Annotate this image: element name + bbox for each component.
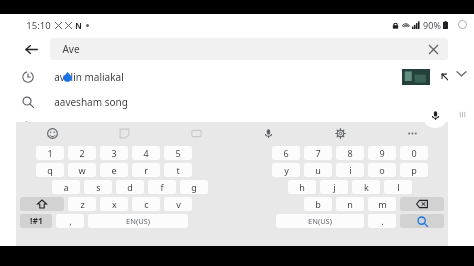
staticText: y: [284, 164, 289, 176]
button[interactable]: key: [20, 197, 64, 211]
button[interactable]: avelin maliakal: [0, 64, 474, 89]
button[interactable]: 6: [272, 146, 300, 160]
staticText: t: [176, 164, 180, 176]
button[interactable]: a: [52, 180, 80, 194]
button[interactable]: c: [132, 197, 160, 211]
staticText: b: [315, 198, 321, 210]
button[interactable]: z: [68, 197, 96, 211]
button[interactable]: x: [100, 197, 128, 211]
staticText: 6: [283, 147, 289, 159]
button[interactable]: r: [132, 163, 160, 177]
button[interactable]: key: [400, 197, 444, 211]
button[interactable]: Insert suggestion: [438, 70, 452, 84]
staticText: z: [80, 198, 85, 210]
button[interactable]: more: [376, 122, 448, 144]
button[interactable]: .: [368, 214, 396, 228]
staticText: i: [349, 164, 352, 176]
button[interactable]: d: [116, 180, 144, 194]
button[interactable]: aavesham song: [0, 89, 474, 114]
button[interactable]: y: [272, 163, 300, 177]
staticText: j: [333, 181, 336, 193]
button[interactable]: sticker: [88, 122, 160, 144]
staticText: N: [75, 20, 82, 31]
button[interactable]: e: [100, 163, 128, 177]
button[interactable]: k: [352, 180, 380, 194]
staticText: p: [411, 164, 417, 176]
staticText: o: [379, 164, 385, 176]
staticText: k: [364, 181, 369, 193]
button[interactable]: EN(US): [276, 214, 364, 228]
staticText: .: [381, 215, 384, 227]
staticText: 8: [347, 147, 353, 159]
button[interactable]: Home: [458, 20, 467, 29]
staticText: h: [299, 181, 305, 193]
button[interactable]: g: [180, 180, 208, 194]
staticText: 5: [175, 147, 181, 159]
staticText: 3: [111, 147, 117, 159]
button[interactable]: n: [336, 197, 364, 211]
button[interactable]: Recents: [458, 110, 467, 119]
button[interactable]: key: [400, 214, 444, 228]
button[interactable]: emoji: [16, 122, 88, 144]
button[interactable]: o: [368, 163, 396, 177]
button[interactable]: h: [288, 180, 316, 194]
staticText: 7: [315, 147, 321, 159]
staticText: aavesham song: [54, 95, 128, 109]
button[interactable]: u: [304, 163, 332, 177]
button[interactable]: 3: [100, 146, 128, 160]
staticText: l: [397, 181, 400, 193]
staticText: EN(US): [126, 216, 150, 226]
button[interactable]: Clear: [422, 38, 444, 60]
staticText: x: [112, 198, 117, 210]
staticText: n: [347, 198, 353, 210]
staticText: g: [191, 181, 197, 193]
staticText: 9: [379, 147, 385, 159]
staticText: ,: [69, 215, 72, 227]
button[interactable]: 0: [400, 146, 428, 160]
button[interactable]: Voice search: [422, 102, 448, 128]
button[interactable]: i: [336, 163, 364, 177]
staticText: f: [160, 181, 164, 193]
button[interactable]: Ave: [50, 38, 448, 60]
button[interactable]: j: [320, 180, 348, 194]
button[interactable]: q: [36, 163, 64, 177]
button[interactable]: 7: [304, 146, 332, 160]
button[interactable]: ,: [56, 214, 84, 228]
staticText: 1: [47, 147, 53, 159]
button[interactable]: 2: [68, 146, 96, 160]
staticText: v: [176, 198, 181, 210]
button[interactable]: w: [68, 163, 96, 177]
button[interactable]: EN(US): [88, 214, 188, 228]
staticText: EN(US): [308, 216, 332, 226]
staticText: a: [63, 181, 69, 193]
staticText: e: [111, 164, 117, 176]
button[interactable]: 5: [164, 146, 192, 160]
button[interactable]: 9: [368, 146, 396, 160]
button[interactable]: m: [368, 197, 396, 211]
staticText: avelin maliakal: [54, 70, 124, 84]
button[interactable]: b: [304, 197, 332, 211]
button[interactable]: p: [400, 163, 428, 177]
button[interactable]: [0, 114, 474, 139]
button[interactable]: 1: [36, 146, 64, 160]
button[interactable]: 8: [336, 146, 364, 160]
button[interactable]: s: [84, 180, 112, 194]
staticText: 0: [411, 147, 417, 159]
button[interactable]: t: [164, 163, 192, 177]
button[interactable]: key: [20, 214, 52, 228]
button[interactable]: v: [164, 197, 192, 211]
staticText: 4: [143, 147, 149, 159]
staticText: Ave: [62, 42, 80, 56]
button[interactable]: Collapse: [454, 66, 468, 80]
button[interactable]: f: [148, 180, 176, 194]
button[interactable]: mic: [232, 122, 304, 144]
button[interactable]: l: [384, 180, 412, 194]
button[interactable]: Back: [18, 36, 44, 62]
button[interactable]: settings: [304, 122, 376, 144]
button[interactable]: gif: [160, 122, 232, 144]
staticText: d: [127, 181, 133, 193]
button[interactable]: 4: [132, 146, 160, 160]
staticText: q: [47, 164, 53, 176]
staticText: 90%: [423, 19, 441, 31]
staticText: u: [315, 164, 321, 176]
